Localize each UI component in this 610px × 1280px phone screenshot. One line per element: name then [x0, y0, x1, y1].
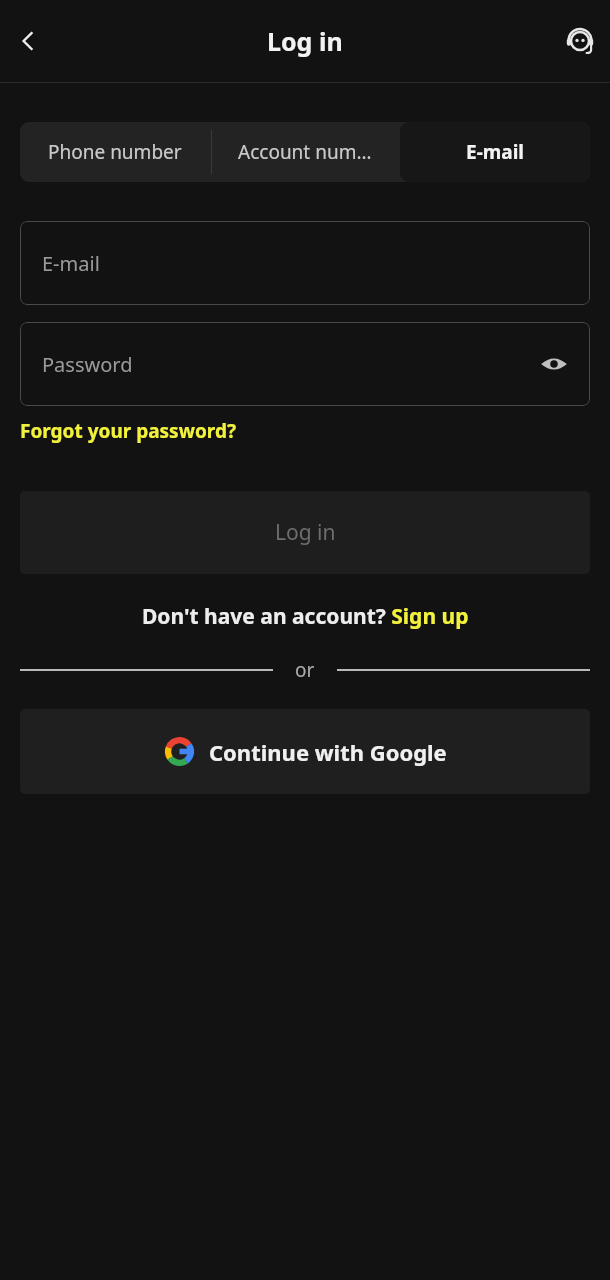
button[interactable]: Back — [4, 17, 52, 65]
button[interactable]: Forgot your password? — [20, 418, 236, 444]
button[interactable]: E-mail — [400, 122, 590, 182]
staticText: Password — [42, 351, 133, 378]
button[interactable]: Log in — [20, 491, 590, 574]
button[interactable]: Customer support — [556, 17, 604, 65]
staticText: Don't have an account? Sign up — [142, 602, 469, 631]
staticText: Forgot your password? — [20, 418, 236, 444]
staticText: Phone number — [48, 139, 182, 165]
button[interactable]: Password — [20, 322, 590, 406]
button[interactable]: Continue with Google — [20, 709, 590, 794]
staticText: Continue with Google — [209, 737, 447, 767]
staticText: E-mail — [466, 139, 524, 165]
button[interactable]: Don't have an account? Sign up — [142, 602, 469, 631]
staticText: or — [295, 657, 315, 683]
staticText: Account num… — [238, 139, 372, 165]
button[interactable]: E-mail — [20, 221, 590, 305]
staticText: E-mail — [42, 250, 100, 277]
staticText: Log in — [267, 24, 343, 58]
button[interactable]: Phone number — [20, 122, 210, 182]
button[interactable]: Account num… — [210, 122, 400, 182]
button[interactable]: Show password — [530, 340, 578, 388]
staticText: Log in — [275, 518, 336, 547]
